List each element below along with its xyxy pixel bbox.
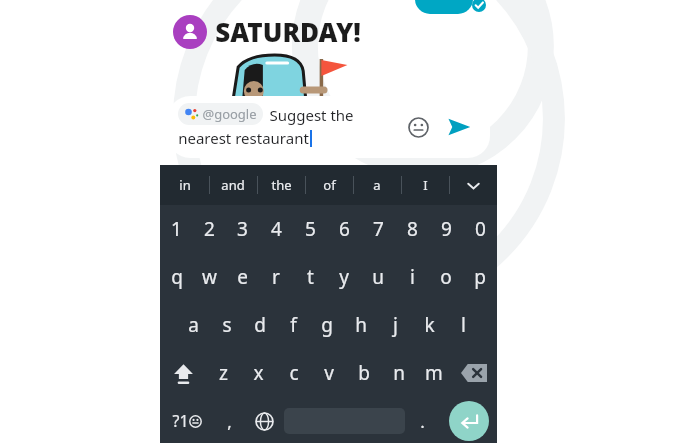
button[interactable]: w bbox=[193, 253, 226, 301]
button[interactable]: Shift bbox=[160, 349, 206, 397]
button[interactable]: t bbox=[293, 253, 327, 301]
button[interactable]: 2 bbox=[193, 205, 226, 253]
staticText: 1 bbox=[171, 216, 182, 242]
staticText: . bbox=[420, 410, 425, 433]
button[interactable]: ?1 bbox=[160, 397, 213, 443]
staticText: ?1 bbox=[172, 410, 189, 432]
button[interactable]: j bbox=[378, 301, 412, 349]
staticText: 4 bbox=[271, 216, 282, 242]
staticText: z bbox=[219, 360, 228, 386]
staticText: g bbox=[321, 312, 333, 338]
button[interactable]: v bbox=[311, 349, 346, 397]
button[interactable]: u bbox=[361, 253, 395, 301]
button[interactable]: @google bbox=[168, 96, 490, 158]
staticText: q bbox=[171, 264, 183, 290]
staticText: d bbox=[254, 312, 266, 338]
staticText: 7 bbox=[373, 216, 384, 242]
button[interactable]: Collapse suggestions bbox=[449, 165, 497, 205]
staticText: j bbox=[393, 312, 398, 338]
staticText: 8 bbox=[407, 216, 418, 242]
other: Delivered bbox=[472, 0, 486, 12]
staticText: y bbox=[339, 264, 349, 290]
button[interactable]: 3 bbox=[226, 205, 259, 253]
button[interactable]: s bbox=[210, 301, 243, 349]
button[interactable]: , bbox=[213, 397, 245, 443]
button[interactable]: 7 bbox=[361, 205, 395, 253]
staticText: m bbox=[425, 360, 443, 386]
button[interactable]: I bbox=[401, 165, 449, 205]
staticText: r bbox=[272, 264, 280, 290]
button[interactable]: x bbox=[241, 349, 276, 397]
staticText: 3 bbox=[237, 216, 248, 242]
button[interactable]: l bbox=[446, 301, 480, 349]
button[interactable]: Backspace bbox=[451, 349, 497, 397]
staticText: p bbox=[474, 264, 486, 290]
staticText: w bbox=[202, 264, 217, 290]
button[interactable]: 1 bbox=[160, 205, 193, 253]
button[interactable]: @google bbox=[184, 105, 257, 123]
button[interactable]: Send bbox=[442, 110, 476, 144]
button[interactable]: a bbox=[353, 165, 401, 205]
staticText: 0 bbox=[475, 216, 486, 242]
button[interactable]: Change language bbox=[245, 397, 284, 443]
button[interactable]: the bbox=[257, 165, 305, 205]
staticText: 9 bbox=[441, 216, 452, 242]
staticText: l bbox=[461, 312, 466, 338]
staticText: I bbox=[423, 176, 428, 194]
button[interactable]: Emoji bbox=[402, 111, 434, 143]
button[interactable]: . bbox=[405, 397, 440, 443]
button[interactable]: a bbox=[177, 301, 210, 349]
button[interactable]: o bbox=[429, 253, 463, 301]
button[interactable]: g bbox=[310, 301, 344, 349]
staticText: nearest restaurant bbox=[178, 128, 309, 148]
button[interactable]: 5 bbox=[293, 205, 327, 253]
button[interactable]: k bbox=[412, 301, 446, 349]
staticText: v bbox=[324, 360, 334, 386]
button[interactable]: h bbox=[344, 301, 378, 349]
staticText: e bbox=[237, 264, 248, 290]
button[interactable]: n bbox=[381, 349, 416, 397]
button[interactable]: c bbox=[276, 349, 311, 397]
button[interactable]: p bbox=[463, 253, 497, 301]
button[interactable]: of bbox=[305, 165, 353, 205]
staticText: h bbox=[355, 312, 367, 338]
staticText: x bbox=[253, 360, 264, 386]
staticText: t bbox=[307, 264, 314, 290]
staticText: o bbox=[440, 264, 452, 290]
button[interactable]: Enter bbox=[449, 401, 489, 441]
staticText: 2 bbox=[204, 216, 215, 242]
button[interactable]: f bbox=[276, 301, 310, 349]
staticText: 5 bbox=[305, 216, 316, 242]
button[interactable]: q bbox=[160, 253, 193, 301]
staticText: u bbox=[372, 264, 384, 290]
button[interactable]: y bbox=[327, 253, 361, 301]
staticText: the bbox=[271, 176, 292, 194]
button[interactable]: 8 bbox=[395, 205, 429, 253]
staticText: Suggest the bbox=[269, 105, 354, 125]
button[interactable]: 6 bbox=[327, 205, 361, 253]
button[interactable]: 9 bbox=[429, 205, 463, 253]
staticText: @google bbox=[202, 105, 257, 123]
staticText: s bbox=[222, 312, 232, 338]
staticText: i bbox=[410, 264, 415, 290]
button[interactable]: m bbox=[416, 349, 451, 397]
button[interactable] bbox=[173, 15, 207, 49]
button[interactable]: z bbox=[206, 349, 241, 397]
staticText: SATURDAY! bbox=[215, 14, 361, 49]
staticText: and bbox=[221, 176, 245, 194]
button[interactable]: 0 bbox=[463, 205, 497, 253]
staticText: in bbox=[179, 176, 191, 194]
button[interactable]: in bbox=[160, 165, 209, 205]
staticText: n bbox=[393, 360, 405, 386]
button[interactable]: b bbox=[346, 349, 381, 397]
button[interactable]: e bbox=[226, 253, 259, 301]
button[interactable] bbox=[415, 0, 473, 14]
staticText: a bbox=[373, 176, 381, 194]
button[interactable]: i bbox=[395, 253, 429, 301]
button[interactable]: r bbox=[259, 253, 293, 301]
button[interactable]: 4 bbox=[259, 205, 293, 253]
button[interactable]: and bbox=[209, 165, 257, 205]
button[interactable]: d bbox=[243, 301, 276, 349]
staticText: c bbox=[289, 360, 299, 386]
